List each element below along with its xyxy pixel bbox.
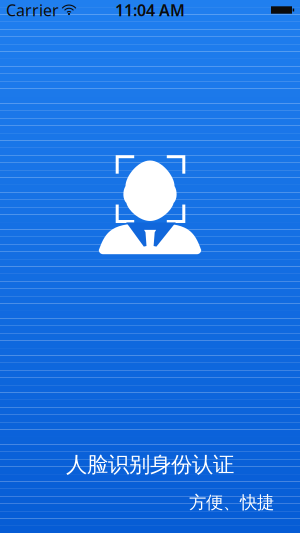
- staticText: Carrier: [6, 0, 59, 21]
- staticText: 人脸识别身份认证: [66, 452, 234, 478]
- staticText: 方便、快捷: [189, 492, 274, 513]
- staticText: 11:04 AM: [115, 0, 185, 21]
